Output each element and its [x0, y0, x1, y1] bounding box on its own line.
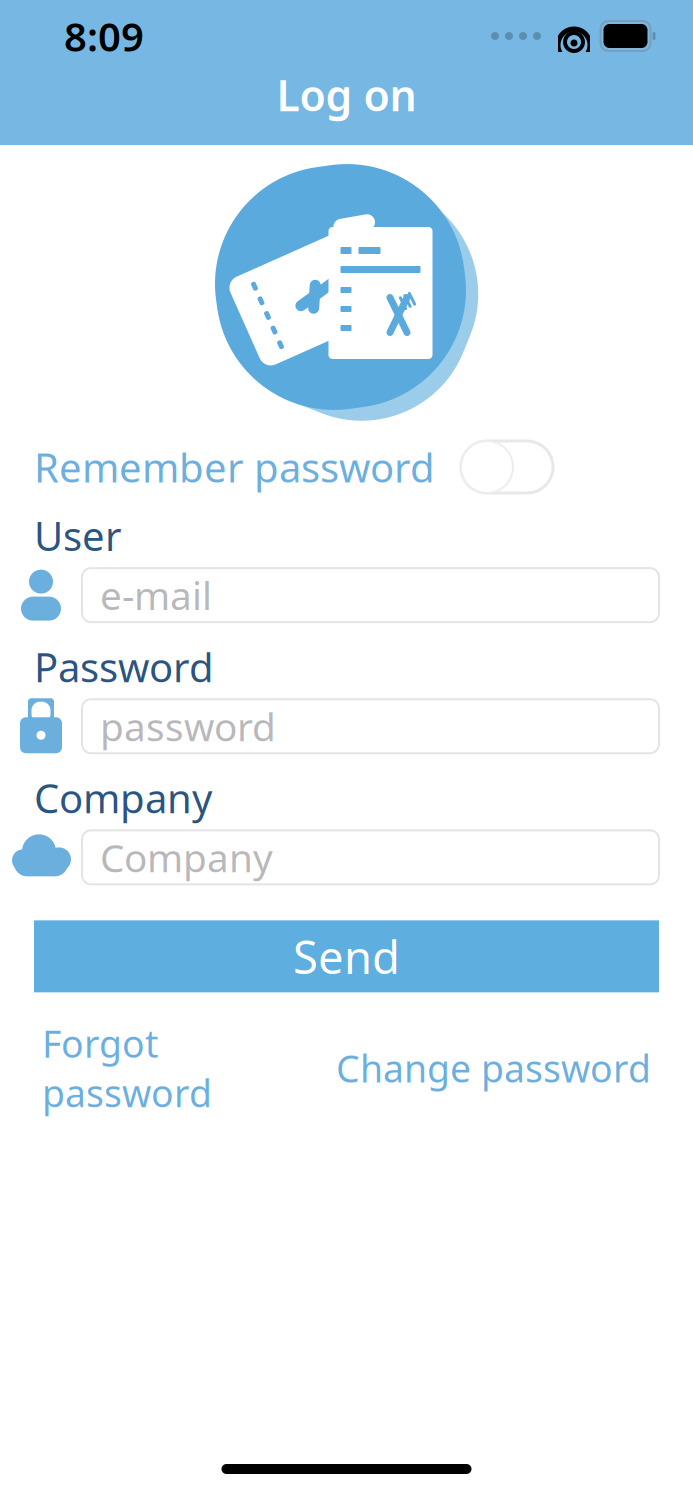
staticText: Change password	[336, 1043, 651, 1093]
staticText: password	[100, 701, 276, 752]
button[interactable]: Company	[82, 830, 659, 884]
button[interactable]: Forgot password	[42, 1018, 212, 1118]
staticText: Remember password	[34, 440, 435, 493]
button[interactable]: password	[82, 699, 659, 753]
button[interactable]: Change password	[336, 1043, 651, 1093]
staticText: Company	[34, 771, 212, 824]
button[interactable]: Remember password toggle	[459, 439, 555, 495]
staticText: Send	[293, 926, 400, 986]
staticText: 8:09	[64, 9, 144, 62]
button[interactable]: e-mail	[82, 568, 659, 622]
staticText: Forgot password	[42, 1018, 212, 1118]
staticText: Company	[100, 832, 273, 883]
staticText: Password	[34, 640, 214, 693]
staticText: e-mail	[100, 569, 212, 621]
button[interactable]: Send	[34, 920, 659, 992]
staticText: Log on	[276, 66, 416, 123]
staticText: User	[34, 509, 122, 562]
